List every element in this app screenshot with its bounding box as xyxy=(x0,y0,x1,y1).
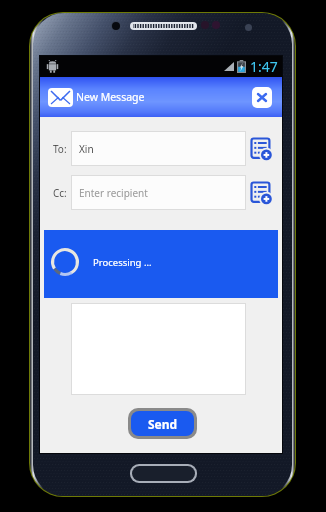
button[interactable]: Processing ... xyxy=(44,230,278,298)
button[interactable]: Xin xyxy=(71,131,246,166)
staticText: Enter recipient xyxy=(79,186,148,200)
button[interactable]: Pick contact xyxy=(251,138,271,160)
button[interactable]: Close xyxy=(252,87,272,108)
button[interactable]: Send xyxy=(131,411,194,436)
button[interactable] xyxy=(71,303,246,395)
staticText: Xin xyxy=(79,142,94,156)
staticText: To: xyxy=(53,142,67,156)
staticText: Processing ... xyxy=(93,256,152,269)
staticText: New Message xyxy=(76,90,145,104)
button[interactable]: Pick contact xyxy=(251,182,271,204)
button[interactable]: Enter recipient xyxy=(71,175,246,210)
staticText: Send xyxy=(148,416,178,432)
button[interactable]: New Message xyxy=(40,77,282,117)
staticText: 1:47 xyxy=(250,57,278,76)
staticText: Cc: xyxy=(53,186,67,200)
